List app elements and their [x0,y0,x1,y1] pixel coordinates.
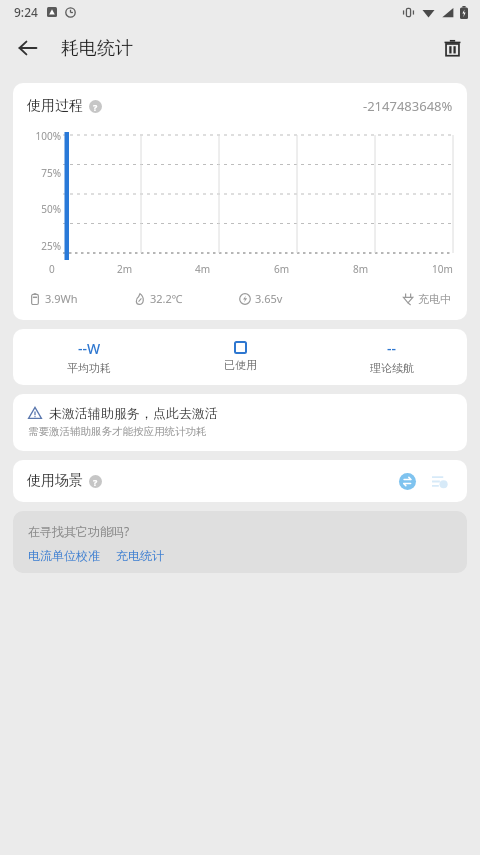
button[interactable]: Back [8,28,48,68]
staticText: 需要激活辅助服务才能按应用统计功耗 [28,425,207,438]
staticText: 6m [274,262,290,276]
staticText: 充电中 [418,292,451,306]
button[interactable]: Delete [432,28,472,68]
staticText: 3.9Wh [45,291,78,306]
staticText: 耗电统计 [61,37,133,60]
button[interactable]: History [425,467,453,495]
staticText: 50% [31,202,61,216]
staticText: 已使用 [224,358,257,372]
staticText: -- [387,339,396,358]
staticText: 2m [117,262,133,276]
staticText: 100% [31,129,61,143]
staticText: 使用过程 [27,97,83,115]
button[interactable]: 电流单位校准 [28,548,100,563]
button[interactable]: 充电统计 [116,548,164,563]
staticText: 10m [432,262,453,276]
staticText: ? [93,476,98,488]
staticText: 使用场景 [27,472,83,490]
staticText: 电流单位校准 [28,548,100,563]
staticText: 平均功耗 [67,361,111,375]
button[interactable]: -- [316,329,467,385]
staticText: ? [93,101,98,113]
staticText: 25% [31,239,61,253]
button[interactable]: 已使用 [224,329,257,385]
staticText: 0 [49,262,55,276]
button[interactable]: --W [13,329,165,385]
button[interactable]: 未激活辅助服务，点此去激活 [13,394,467,451]
staticText: 8m [353,262,369,276]
staticText: 32.2℃ [150,291,183,306]
staticText: 3.65v [255,291,283,306]
staticText: -2147483648% [363,97,453,115]
button[interactable]: Refresh [393,467,421,495]
staticText: --W [78,339,101,358]
staticText: 未激活辅助服务，点此去激活 [49,405,218,421]
staticText: 4m [195,262,211,276]
staticText: 理论续航 [370,361,414,375]
staticText: 75% [31,166,61,180]
staticText: 充电统计 [116,548,164,563]
staticText: 在寻找其它功能吗? [28,523,130,539]
staticText: 9:24 [14,4,38,20]
